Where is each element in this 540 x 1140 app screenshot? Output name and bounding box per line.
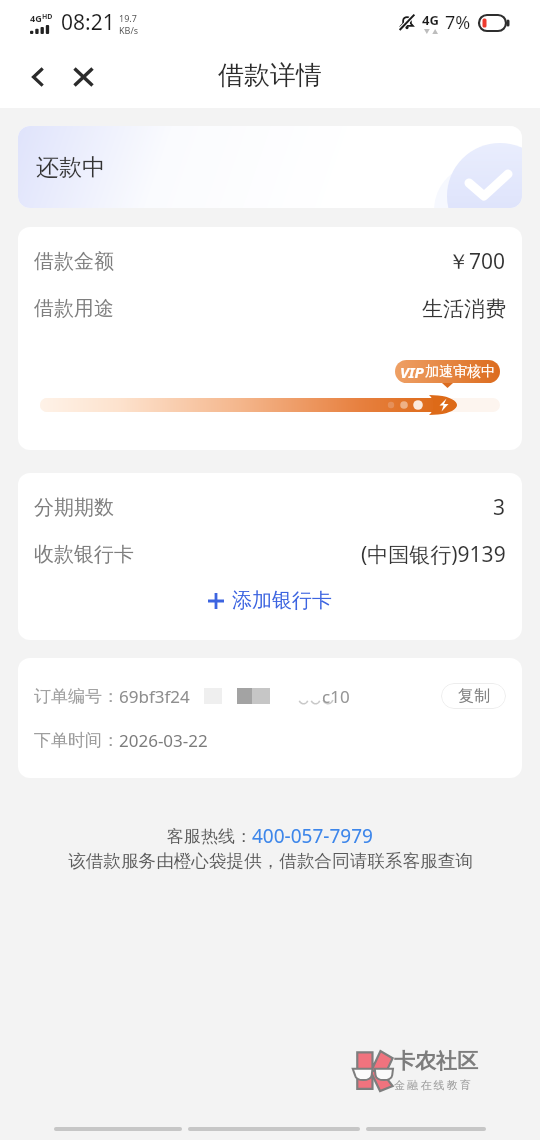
staticText: 加速审核中 [425,363,495,381]
button[interactable]: 400-057-7979 [252,823,373,849]
staticText: 借款用途 [34,296,114,321]
staticText: KB/s [119,24,139,34]
staticText: 4G [30,12,42,24]
staticText: 收款银行卡 [34,542,134,567]
staticText: ￥700 [448,247,506,276]
staticText: 19.7 [119,12,137,24]
staticText: 生活消费 [422,296,506,322]
staticText: 借款详情 [218,59,322,92]
staticText: 4G [422,11,439,29]
button[interactable]: 添加银行卡 [18,578,522,623]
staticText: 还款中 [36,153,105,182]
button[interactable]: Back [14,50,60,104]
staticText: 69bf3f24 [119,685,190,708]
staticText: 借款金额 [34,249,114,274]
staticText: 下单时间： [34,730,119,751]
staticText: HD [42,12,53,22]
staticText: 分期期数 [34,495,114,520]
button[interactable]: Close [60,50,106,104]
staticText: 3 [493,493,506,522]
button[interactable]: 复制 [441,683,506,709]
staticText: 卡农社区 [394,1048,478,1074]
staticText: 金融在线教育 [394,1078,474,1092]
staticText: 该借款服务由橙心袋提供，借款合同请联系客服查询 [68,850,473,872]
staticText: 08:21 [61,8,115,37]
button[interactable]: 还款中 [18,126,522,208]
staticText: 7% [445,10,471,35]
staticText: 订单编号： [34,686,119,707]
staticText: c10 [322,685,350,708]
staticText: (中国银行)9139 [361,540,506,569]
staticText: VIP [400,362,424,382]
staticText: 复制 [458,686,490,706]
staticText: 2026-03-22 [119,729,208,752]
staticText: 添加银行卡 [232,588,332,613]
staticText: 客服热线： [167,826,252,847]
